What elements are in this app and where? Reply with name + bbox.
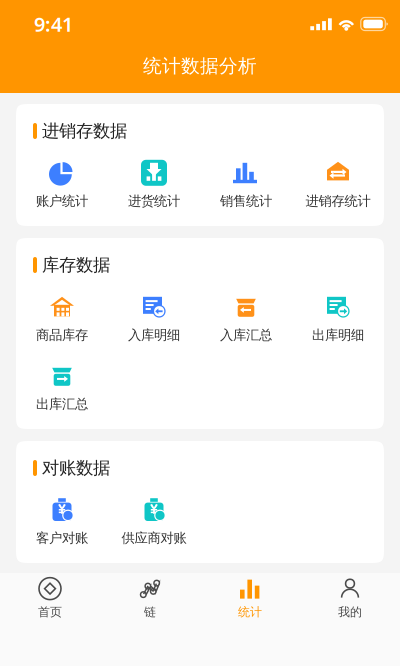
staticText: 出库明细	[312, 327, 364, 343]
button[interactable]: 客户对账	[16, 492, 108, 550]
staticText: 进货统计	[128, 193, 180, 209]
button[interactable]: 我的	[300, 573, 400, 623]
staticText: 客户对账	[36, 530, 88, 546]
staticText: 入库明细	[128, 327, 180, 343]
staticText: 进销存统计	[305, 193, 370, 209]
button[interactable]: 链	[100, 573, 200, 623]
button[interactable]: 商品库存	[16, 289, 108, 347]
button[interactable]: 进货统计	[108, 155, 200, 213]
staticText: 供应商对账	[121, 530, 186, 546]
button[interactable]: 出库汇总	[16, 358, 108, 416]
staticText: 首页	[38, 605, 62, 619]
staticText: 商品库存	[36, 327, 88, 343]
staticText: 进销存数据	[42, 120, 127, 142]
button[interactable]: 账户统计	[16, 155, 108, 213]
button[interactable]: 入库汇总	[200, 289, 292, 347]
staticText: 出库汇总	[36, 396, 88, 412]
button[interactable]: 进销存统计	[292, 155, 384, 213]
button[interactable]: 销售统计	[200, 155, 292, 213]
staticText: 链	[144, 605, 156, 619]
button[interactable]: 出库明细	[292, 289, 384, 347]
staticText: 对账数据	[42, 457, 110, 479]
button[interactable]: 首页	[0, 573, 100, 623]
staticText: 账户统计	[36, 193, 88, 209]
staticText: 库存数据	[42, 254, 110, 276]
button[interactable]: 统计	[200, 573, 300, 623]
staticText: 统计数据分析	[143, 54, 257, 77]
button[interactable]: 入库明细	[108, 289, 200, 347]
staticText: 统计	[238, 605, 262, 619]
button[interactable]: 供应商对账	[108, 492, 200, 550]
staticText: 9:41	[34, 11, 73, 37]
staticText: 销售统计	[220, 193, 272, 209]
staticText: 入库汇总	[220, 327, 272, 343]
staticText: 我的	[338, 605, 362, 619]
